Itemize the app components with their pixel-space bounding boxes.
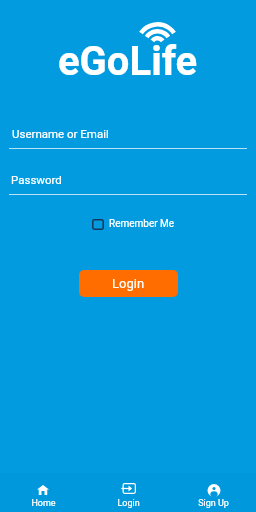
staticText: eGoLife	[58, 38, 198, 85]
button[interactable]: Password	[11, 173, 247, 186]
staticText: Password	[11, 173, 62, 186]
staticText: Remember Me	[109, 218, 175, 230]
staticText: Login	[112, 276, 145, 291]
button[interactable]: Login	[79, 270, 178, 297]
button[interactable]: Username or Email	[12, 127, 248, 140]
button[interactable]: Home	[0, 473, 86, 512]
staticText: Sign Up	[198, 498, 229, 509]
button[interactable]: Remember Me	[92, 218, 175, 230]
staticText: Login	[117, 498, 140, 509]
staticText: Username or Email	[12, 127, 109, 140]
staticText: Home	[31, 498, 56, 509]
button[interactable]: Sign Up	[171, 473, 256, 512]
button[interactable]: Login	[86, 473, 171, 512]
